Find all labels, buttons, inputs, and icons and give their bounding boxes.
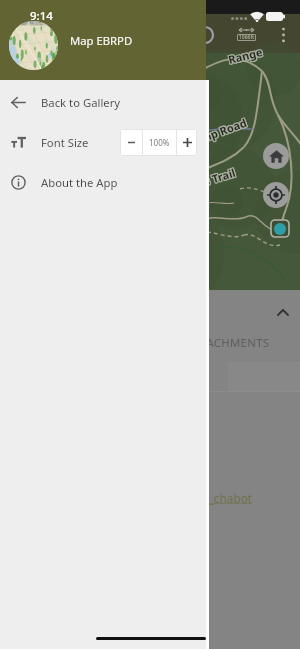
staticText: Ten Hills Trail bbox=[164, 164, 239, 200]
button[interactable]: Expand attachments bbox=[271, 300, 295, 324]
button[interactable]: Open navigation drawer bbox=[196, 26, 214, 44]
staticText: Map EBRPD bbox=[70, 33, 133, 48]
staticText: lake_chabot bbox=[186, 490, 253, 506]
button[interactable]: Increase font size bbox=[177, 129, 197, 156]
button[interactable]: My location bbox=[263, 182, 289, 208]
button[interactable]: Home bbox=[263, 143, 289, 169]
staticText: Range bbox=[227, 44, 264, 67]
staticText: Range bbox=[226, 45, 264, 68]
button[interactable]: About the App bbox=[0, 162, 206, 202]
staticText: Camp Road bbox=[185, 116, 248, 151]
staticText: Range bbox=[228, 45, 265, 68]
staticText: Ten Hills Trail bbox=[165, 165, 239, 201]
staticText: Camp Road bbox=[184, 114, 247, 150]
staticText: Ten Hills Trail bbox=[164, 163, 238, 199]
staticText: ATTACHMENTS bbox=[187, 335, 270, 350]
button[interactable]: Back to Gallery bbox=[0, 82, 206, 122]
staticText: Range bbox=[225, 43, 263, 66]
staticText: 100% bbox=[149, 137, 170, 148]
staticText: About the App bbox=[41, 175, 118, 190]
staticText: Font Size bbox=[41, 135, 89, 150]
staticText: Range bbox=[228, 44, 265, 67]
staticText: Camp Road bbox=[185, 114, 248, 149]
staticText: 1066ft bbox=[239, 34, 254, 41]
staticText: Range bbox=[226, 43, 264, 66]
staticText: Camp Road bbox=[186, 116, 249, 151]
button[interactable]: 100% bbox=[143, 129, 176, 156]
staticText: Camp Road bbox=[186, 114, 249, 149]
staticText: Camp Road bbox=[186, 114, 250, 150]
staticText: Range bbox=[227, 45, 264, 68]
staticText: Camp Road bbox=[184, 115, 248, 150]
staticText: Back to Gallery bbox=[41, 95, 121, 110]
staticText: 9:14 bbox=[30, 8, 53, 24]
staticText: Ten Hills Trail bbox=[163, 166, 237, 202]
staticText: Ten Hills Trail bbox=[163, 165, 238, 200]
button[interactable]: More options bbox=[274, 26, 292, 44]
staticText: Range bbox=[226, 44, 263, 67]
staticText: Ten Hills Trail bbox=[162, 164, 236, 200]
staticText: Ten Hills Trail bbox=[162, 165, 237, 201]
staticText: Ten Hills Trail bbox=[163, 164, 237, 199]
staticText: Range bbox=[227, 43, 265, 66]
staticText: Camp Road bbox=[185, 115, 249, 150]
staticText: Camp Road bbox=[187, 115, 250, 151]
staticText: Ten Hills Trail bbox=[164, 166, 238, 201]
button[interactable]: Decrease font size bbox=[120, 129, 142, 156]
